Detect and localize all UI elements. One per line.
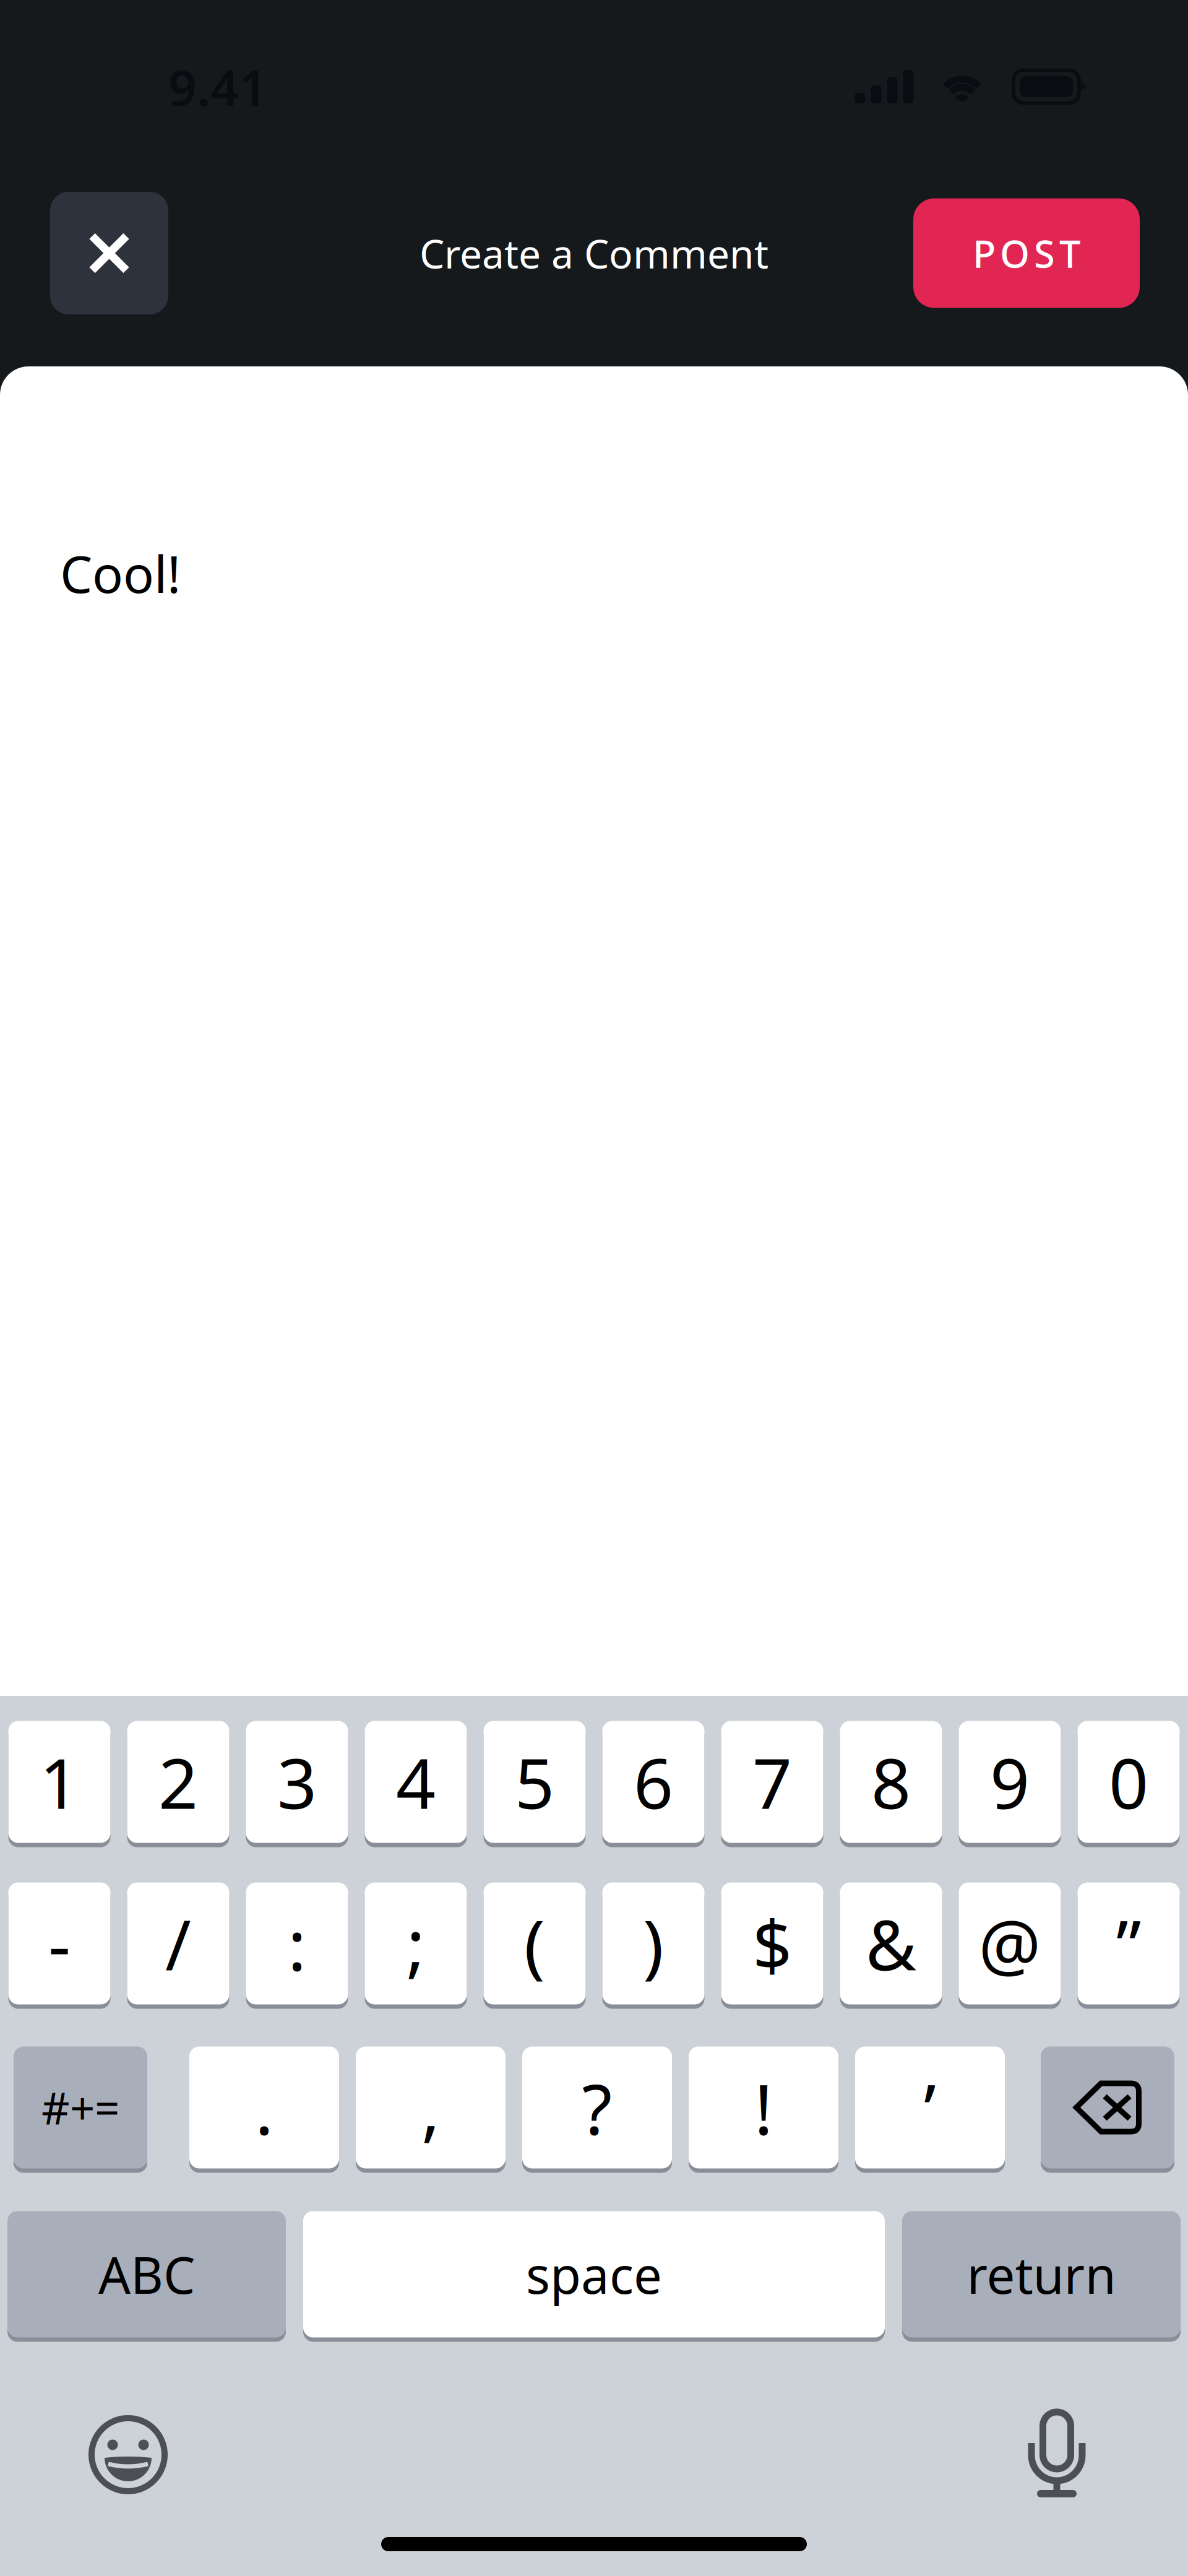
button[interactable]: ? xyxy=(522,2044,672,2171)
staticText: : xyxy=(288,1897,306,1989)
button[interactable]: ; xyxy=(365,1880,467,2007)
staticText: ” xyxy=(1116,1897,1141,1989)
button[interactable]: / xyxy=(127,1880,229,2007)
button[interactable]: return xyxy=(902,2209,1181,2340)
staticText: ’ xyxy=(924,2061,936,2153)
staticText: space xyxy=(526,2241,662,2308)
button[interactable]: ’ xyxy=(855,2044,1005,2171)
staticText: / xyxy=(165,1897,191,1989)
button[interactable]: P xyxy=(913,198,1140,308)
staticText: 8 xyxy=(871,1736,911,1828)
staticText: , xyxy=(421,2061,440,2153)
staticText: - xyxy=(48,1897,71,1989)
staticText: return xyxy=(967,2241,1116,2308)
staticText: & xyxy=(866,1897,916,1989)
staticText: 7 xyxy=(752,1736,792,1828)
staticText: ) xyxy=(643,1897,664,1989)
button[interactable]: 6 xyxy=(602,1719,704,1845)
button[interactable]: space xyxy=(303,2209,885,2340)
staticText: 6 xyxy=(634,1736,673,1828)
staticText: ? xyxy=(582,2061,612,2153)
button[interactable]: ( xyxy=(484,1880,586,2007)
staticText: . xyxy=(255,2061,273,2153)
staticText: ; xyxy=(407,1897,425,1989)
button[interactable]: , xyxy=(356,2044,506,2171)
staticText: $ xyxy=(752,1897,792,1989)
button[interactable]: Emoji keyboard xyxy=(66,2411,190,2498)
button[interactable]: 2 xyxy=(127,1719,229,1845)
button[interactable]: . xyxy=(189,2044,339,2171)
button[interactable]: 9 xyxy=(959,1719,1061,1845)
staticText: Create a Comment xyxy=(420,227,768,279)
button[interactable]: Delete xyxy=(1041,2044,1174,2171)
staticText: 2 xyxy=(158,1736,198,1828)
button[interactable]: 4 xyxy=(365,1719,467,1845)
button[interactable]: $ xyxy=(721,1880,823,2007)
button[interactable]: Dictation xyxy=(995,2411,1119,2498)
button[interactable]: ! xyxy=(689,2044,838,2171)
staticText: 5 xyxy=(515,1736,554,1828)
staticText: 0 xyxy=(1109,1736,1148,1828)
button[interactable]: 1 xyxy=(8,1719,110,1845)
staticText: ABC xyxy=(98,2241,195,2308)
button[interactable]: #+= xyxy=(14,2044,147,2171)
button[interactable]: ABC xyxy=(7,2209,286,2340)
button[interactable]: & xyxy=(840,1880,942,2007)
button[interactable]: - xyxy=(8,1880,110,2007)
button[interactable]: 5 xyxy=(484,1719,586,1845)
staticText: 9.41 xyxy=(168,54,267,120)
button[interactable]: ) xyxy=(602,1880,704,2007)
staticText: @ xyxy=(979,1897,1041,1989)
staticText: 9 xyxy=(990,1736,1030,1828)
staticText: 4 xyxy=(396,1736,436,1828)
staticText: 3 xyxy=(277,1736,317,1828)
button[interactable]: 0 xyxy=(1078,1719,1180,1845)
staticText: Cool! xyxy=(60,539,181,607)
staticText: T xyxy=(1059,228,1080,278)
button[interactable]: : xyxy=(246,1880,348,2007)
staticText: O xyxy=(1000,228,1030,278)
button[interactable]: 3 xyxy=(246,1719,348,1845)
button[interactable]: 7 xyxy=(721,1719,823,1845)
staticText: 1 xyxy=(40,1736,79,1828)
staticText: S xyxy=(1034,228,1055,278)
button[interactable]: Close xyxy=(50,192,168,314)
button[interactable]: @ xyxy=(959,1880,1061,2007)
staticText: P xyxy=(973,228,996,278)
button[interactable]: ” xyxy=(1078,1880,1180,2007)
staticText: #+= xyxy=(41,2078,119,2136)
staticText: ! xyxy=(754,2061,773,2153)
staticText: ( xyxy=(524,1897,545,1989)
button[interactable]: 8 xyxy=(840,1719,942,1845)
